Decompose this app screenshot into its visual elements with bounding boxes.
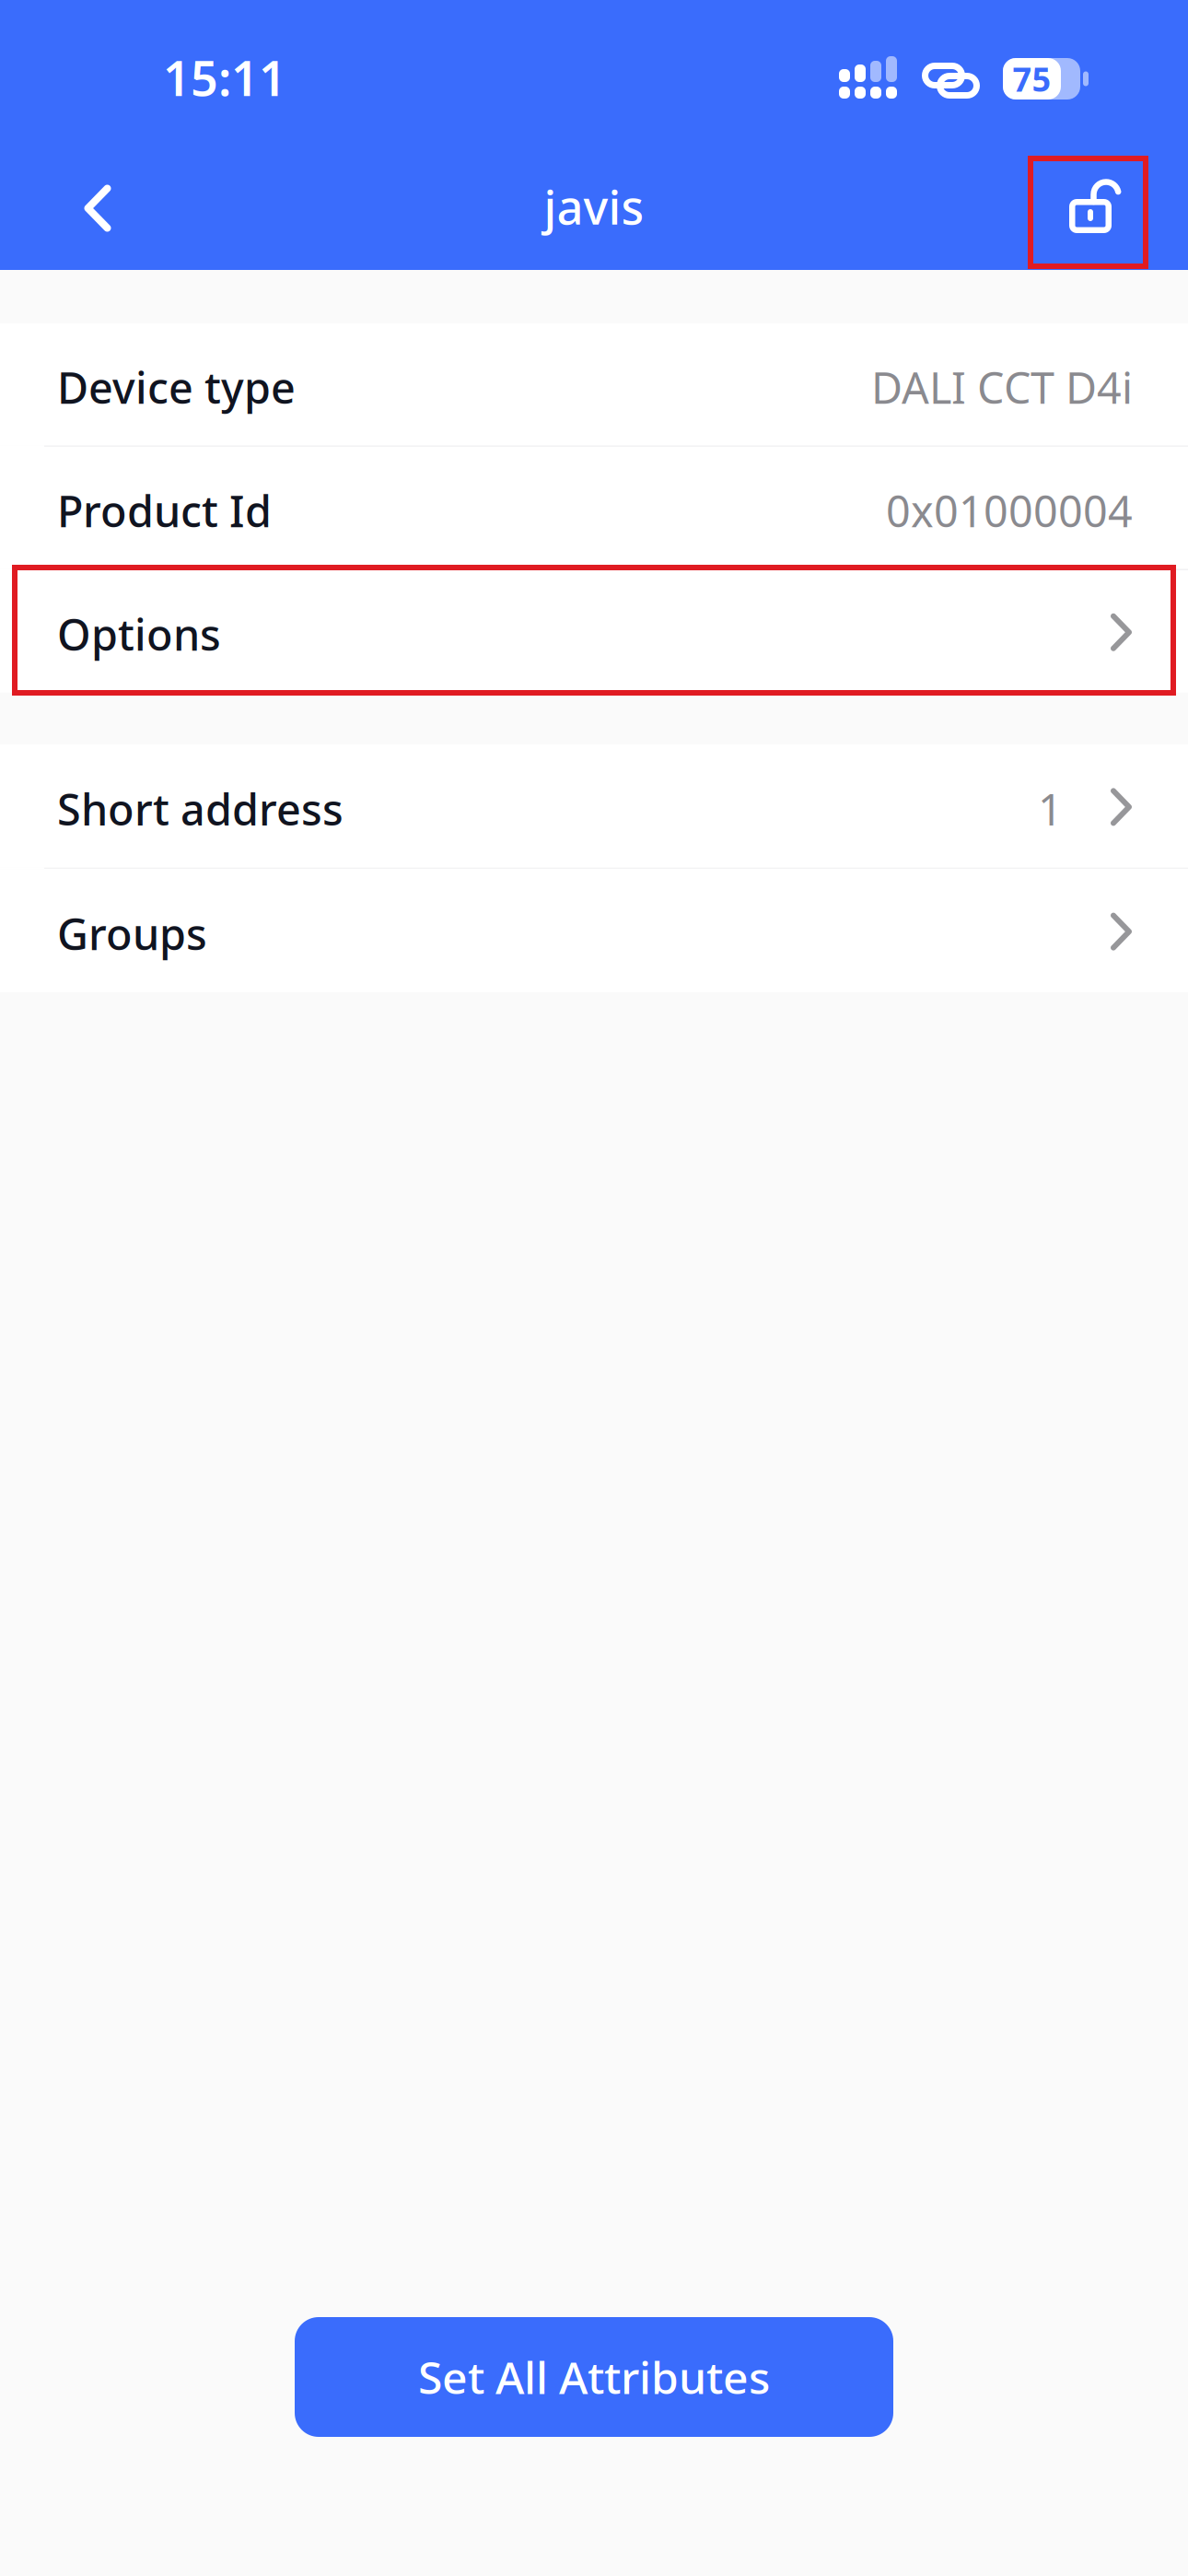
staticText: Options — [57, 606, 221, 663]
staticText: Short address — [57, 780, 344, 837]
staticText: Set All Attributes — [418, 2348, 770, 2406]
staticText: 75 — [1013, 57, 1051, 101]
button[interactable]: Options — [0, 570, 1188, 692]
staticText: 0x01000004 — [886, 482, 1133, 539]
button[interactable]: Groups — [0, 869, 1188, 992]
staticText: 1 — [1038, 780, 1063, 837]
staticText: Device type — [57, 359, 296, 416]
button[interactable]: Short address — [0, 744, 1188, 868]
staticText: DALI CCT D4i — [871, 359, 1133, 416]
staticText: javis — [544, 175, 644, 237]
button[interactable]: Back — [42, 148, 153, 268]
button[interactable]: Set All Attributes — [295, 2317, 893, 2437]
staticText: Product Id — [57, 482, 272, 539]
staticText: Groups — [57, 905, 207, 962]
staticText: 15:11 — [163, 46, 286, 109]
button[interactable]: Unlock — [1031, 158, 1146, 266]
